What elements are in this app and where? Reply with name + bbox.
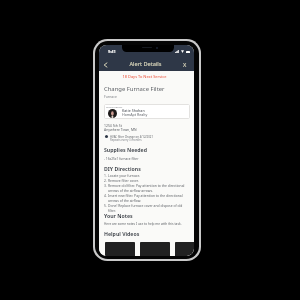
- staticText: X: [183, 61, 187, 69]
- staticText: Repeats every 3 months: [110, 138, 142, 142]
- staticText: Your Notes: [104, 212, 133, 219]
- button[interactable]: Sponsored By: [104, 104, 190, 119]
- staticText: Katie Shohan: [122, 108, 145, 113]
- staticText: HVAC filter Change on 4/12/2021: [110, 135, 153, 139]
- staticText: Insert new filter. Pay attention to the …: [108, 193, 188, 203]
- staticText: HomApt Realty: [122, 112, 148, 117]
- staticText: - 16x25x1 furnace filter: [104, 157, 139, 161]
- staticText: Alert Details: [99, 60, 193, 68]
- staticText: Anywhere Town, MN: [104, 127, 137, 132]
- staticText: 18 Days To Next Service: [99, 74, 192, 79]
- staticText: Locate your furnace.: [108, 173, 141, 178]
- staticText: 4.: [104, 193, 108, 198]
- staticText: Supplies Needed: [104, 146, 147, 153]
- staticText: 1.: [104, 173, 108, 178]
- staticText: DIY Directions: [104, 165, 141, 172]
- staticText: Helpul Videos: [104, 230, 140, 237]
- button[interactable]: Back: [100, 59, 111, 70]
- button[interactable]: Play video 1: [105, 242, 135, 256]
- staticText: 2.: [104, 178, 108, 183]
- button[interactable]: Close: [179, 59, 190, 70]
- staticText: 5.: [104, 203, 108, 208]
- button[interactable]: Play video 3: [175, 242, 194, 256]
- staticText: 1254 5th St: [104, 123, 122, 128]
- staticText: Change Furnace Filter: [104, 85, 165, 93]
- staticText: Remove filter cover.: [108, 178, 139, 183]
- staticText: Remove old filter. Pay attention to the …: [108, 183, 188, 193]
- staticText: Sponsored By: [106, 105, 123, 108]
- staticText: Done! Replace furnace cover and dispose …: [108, 203, 188, 213]
- staticText: 9:41: [108, 49, 116, 54]
- staticText: Furnace: [104, 94, 117, 99]
- staticText: 3.: [104, 183, 108, 188]
- staticText: Here are some notes I use to help me wit…: [104, 222, 182, 226]
